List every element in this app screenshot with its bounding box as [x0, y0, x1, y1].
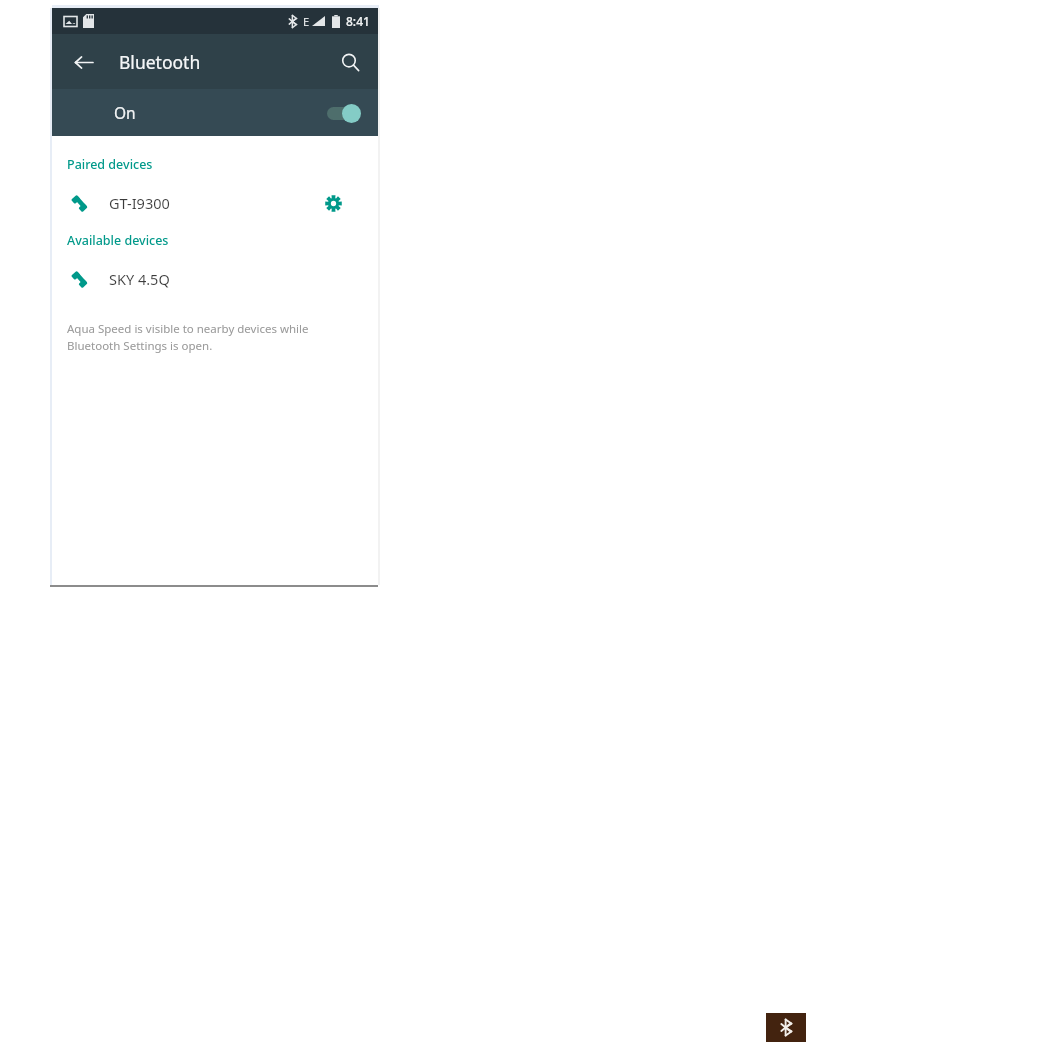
button[interactable]: Search: [332, 44, 368, 80]
staticText: GT-I9300: [109, 193, 170, 213]
button[interactable]: On: [52, 89, 378, 136]
other: Bluetooth: [766, 1013, 806, 1042]
staticText: Bluetooth: [119, 50, 201, 74]
staticText: Aqua Speed is visible to nearby devices …: [67, 321, 309, 354]
staticText: On: [114, 102, 136, 123]
staticText: Paired devices: [67, 156, 153, 173]
staticText: SKY 4.5Q: [109, 269, 170, 289]
staticText: 8:41: [346, 13, 370, 29]
button[interactable]: Navigate up: [66, 45, 100, 79]
staticText: E: [303, 14, 310, 29]
button[interactable]: Device settings: [316, 186, 350, 220]
button[interactable]: SKY 4.5Q: [52, 256, 378, 301]
staticText: Available devices: [67, 232, 169, 249]
button[interactable]: GT-I9300: [52, 180, 378, 225]
